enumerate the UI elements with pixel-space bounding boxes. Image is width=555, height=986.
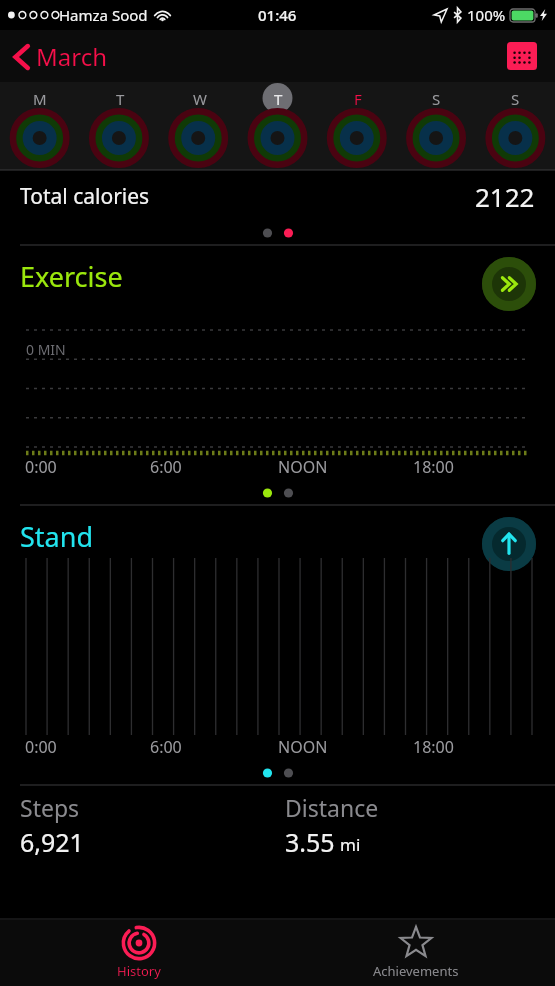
staticText: S bbox=[432, 89, 441, 109]
button[interactable]: Exercise details bbox=[479, 254, 539, 314]
staticText: F bbox=[354, 89, 362, 109]
staticText: mi bbox=[340, 833, 361, 856]
button[interactable]: History bbox=[0, 920, 277, 986]
staticText: 18:00 bbox=[413, 456, 454, 478]
button[interactable]: T bbox=[239, 82, 318, 170]
staticText: 18:00 bbox=[413, 736, 454, 758]
staticText: NOON bbox=[278, 456, 328, 478]
staticText: Hamza Sood bbox=[59, 5, 148, 25]
staticText: 100% bbox=[467, 5, 506, 25]
button[interactable] bbox=[0, 481, 555, 505]
button[interactable]: Calendar bbox=[501, 36, 543, 76]
button[interactable]: Steps bbox=[0, 786, 277, 858]
staticText: Distance bbox=[285, 792, 379, 823]
staticText: W bbox=[193, 89, 207, 109]
button[interactable]: T bbox=[80, 82, 160, 170]
staticText: 3.55 bbox=[285, 825, 335, 858]
button[interactable]: F bbox=[318, 82, 397, 170]
staticText: History bbox=[117, 962, 161, 980]
staticText: Stand bbox=[20, 518, 94, 555]
button[interactable] bbox=[0, 761, 555, 785]
staticText: M bbox=[33, 89, 47, 109]
staticText: 01:46 bbox=[258, 5, 297, 25]
staticText: T bbox=[274, 89, 283, 109]
button[interactable]: S bbox=[476, 82, 555, 170]
staticText: NOON bbox=[278, 736, 328, 758]
button[interactable]: March bbox=[0, 34, 120, 79]
staticText: 6,921 bbox=[20, 825, 84, 858]
button[interactable]: Achievements bbox=[277, 920, 555, 986]
button[interactable] bbox=[0, 221, 555, 245]
button[interactable]: Stand details bbox=[479, 514, 539, 574]
staticText: Achievements bbox=[373, 962, 459, 980]
button[interactable]: W bbox=[160, 82, 239, 170]
staticText: T bbox=[116, 89, 125, 109]
staticText: 0 MIN bbox=[26, 340, 66, 359]
staticText: Exercise bbox=[20, 258, 123, 295]
staticText: 6:00 bbox=[150, 456, 182, 478]
button[interactable]: Distance bbox=[277, 786, 555, 858]
staticText: Steps bbox=[20, 792, 80, 823]
staticText: 0:00 bbox=[25, 456, 57, 478]
staticText: March bbox=[36, 40, 108, 73]
button[interactable]: S bbox=[397, 82, 476, 170]
staticText: Total calories bbox=[20, 182, 150, 211]
button[interactable]: M bbox=[0, 82, 80, 170]
staticText: S bbox=[511, 89, 520, 109]
staticText: 0:00 bbox=[25, 736, 57, 758]
staticText: 6:00 bbox=[150, 736, 182, 758]
button[interactable]: Total calories bbox=[0, 171, 555, 221]
staticText: 2122 bbox=[475, 179, 535, 214]
